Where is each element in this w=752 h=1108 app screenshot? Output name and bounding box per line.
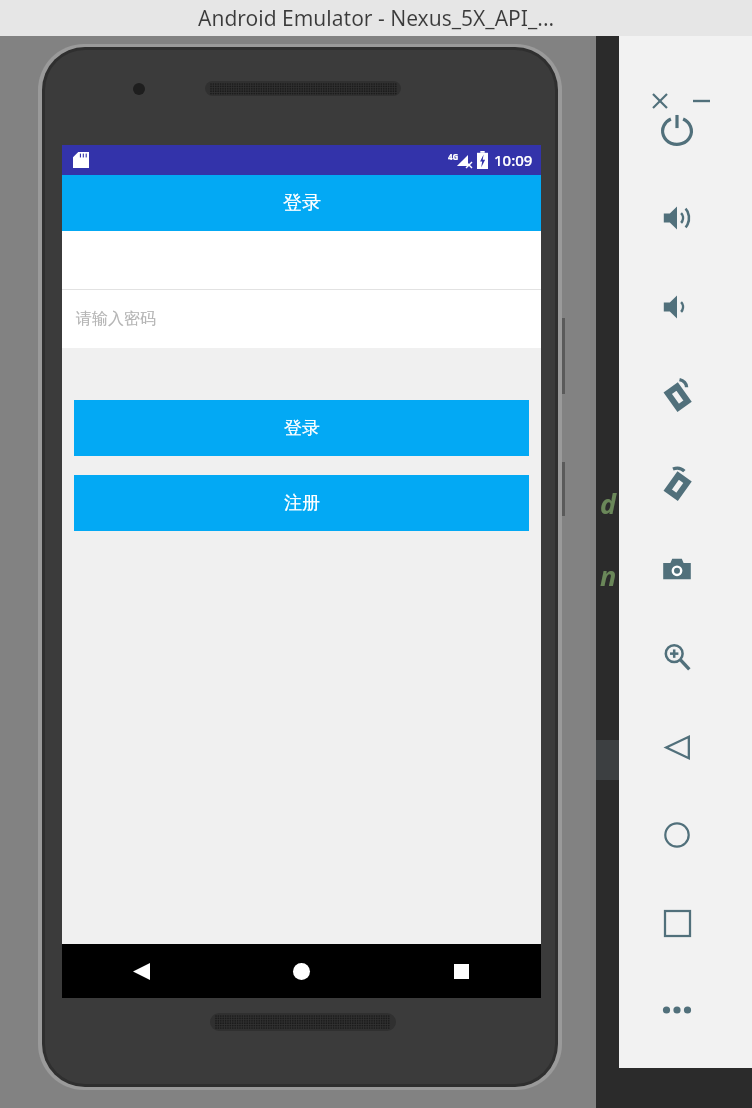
button[interactable]: Rotate left bbox=[647, 364, 707, 424]
staticText: d bbox=[600, 485, 617, 522]
button[interactable]: Close bbox=[643, 84, 677, 118]
button[interactable]: Minimize bbox=[684, 84, 718, 118]
button[interactable]: Recent apps bbox=[381, 944, 541, 998]
staticText: Android Emulator - Nexus_5X_API_... bbox=[198, 4, 555, 33]
button[interactable]: Home bbox=[647, 805, 707, 865]
button[interactable]: 登录 bbox=[62, 175, 541, 231]
button[interactable]: Overview bbox=[647, 893, 707, 953]
button[interactable]: Volume down bbox=[647, 277, 707, 337]
button[interactable]: Power bbox=[647, 100, 707, 160]
staticText: 4G bbox=[448, 151, 459, 162]
staticText: 注册 bbox=[284, 492, 320, 515]
button[interactable]: Volume up bbox=[647, 188, 707, 248]
button[interactable]: Back bbox=[62, 944, 221, 998]
button[interactable]: More bbox=[647, 980, 707, 1040]
staticText: 登录 bbox=[284, 417, 320, 440]
staticText: 10:09 bbox=[494, 150, 533, 170]
staticText: 请输入密码 bbox=[76, 309, 156, 329]
staticText: n bbox=[600, 557, 617, 594]
button[interactable]: Take screenshot bbox=[647, 539, 707, 599]
button[interactable]: Zoom bbox=[647, 627, 707, 687]
button[interactable]: 登录 bbox=[74, 400, 529, 456]
button[interactable]: Rotate right bbox=[647, 453, 707, 513]
button[interactable]: 请输入密码 bbox=[62, 290, 541, 348]
button[interactable]: 注册 bbox=[74, 475, 529, 531]
staticText: 登录 bbox=[283, 191, 321, 215]
button[interactable]: Home bbox=[221, 944, 381, 998]
button[interactable]: Back bbox=[647, 717, 707, 777]
